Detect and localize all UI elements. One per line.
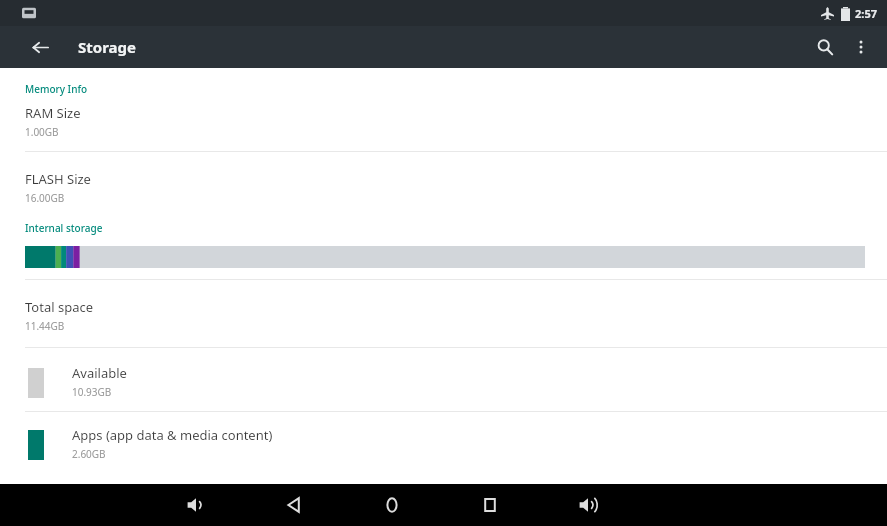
button[interactable]: Total space — [0, 280, 887, 333]
button[interactable]: Search — [807, 29, 843, 65]
button[interactable]: Back — [24, 31, 56, 63]
staticText: 10.93GB — [72, 385, 112, 399]
staticText: Internal storage — [25, 221, 103, 235]
staticText: Available — [72, 364, 127, 382]
button[interactable]: Recents — [469, 484, 511, 526]
button[interactable]: More options — [843, 29, 879, 65]
button[interactable]: Volume down — [175, 484, 217, 526]
button[interactable]: RAM Size — [0, 96, 887, 139]
staticText: RAM Size — [25, 104, 81, 122]
button[interactable]: Volume up — [567, 484, 609, 526]
staticText: Apps (app data & media content) — [72, 426, 273, 444]
staticText: Storage — [78, 37, 136, 57]
button[interactable]: Back — [273, 484, 315, 526]
staticText: 11.44GB — [25, 319, 65, 333]
staticText: Total space — [25, 298, 93, 316]
staticText: Memory Info — [25, 82, 88, 96]
button[interactable]: Apps (app data & media content) — [0, 412, 887, 461]
button[interactable]: Available — [0, 348, 887, 399]
button[interactable]: FLASH Size — [0, 152, 887, 205]
staticText: FLASH Size — [25, 170, 91, 188]
button[interactable]: Home — [371, 484, 413, 526]
staticText: 16.00GB — [25, 191, 65, 205]
staticText: 2:57 — [855, 6, 877, 21]
staticText: 1.00GB — [25, 125, 59, 139]
staticText: 2.60GB — [72, 447, 106, 461]
